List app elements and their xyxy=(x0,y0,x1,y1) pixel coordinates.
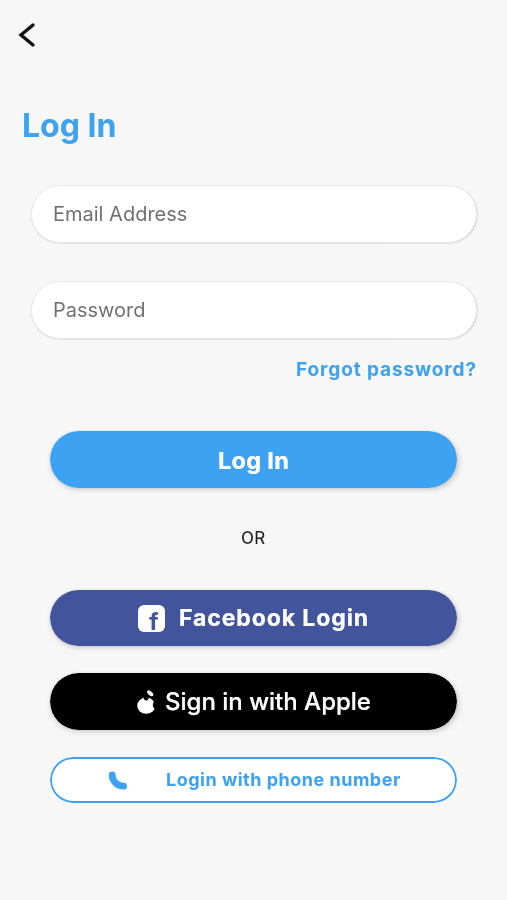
button[interactable]: Email Address xyxy=(31,185,477,243)
staticText: Log In xyxy=(218,446,290,474)
staticText: Log In xyxy=(22,106,117,145)
staticText: Email Address xyxy=(53,202,188,226)
staticText: f xyxy=(149,607,159,632)
button[interactable]: Password xyxy=(31,281,477,339)
staticText: Password xyxy=(53,298,146,322)
button[interactable] xyxy=(10,14,50,54)
button[interactable]: Login with phone number xyxy=(50,757,457,803)
staticText: Login with phone number xyxy=(166,769,401,791)
button[interactable]: Forgot password? xyxy=(296,358,477,381)
button[interactable]: Log In xyxy=(50,431,457,488)
staticText: Sign in with Apple xyxy=(165,687,371,716)
staticText: Facebook Login xyxy=(179,604,369,632)
button[interactable]: f xyxy=(50,590,457,646)
button[interactable]: Sign in with Apple xyxy=(50,673,457,730)
staticText: OR xyxy=(241,528,266,549)
